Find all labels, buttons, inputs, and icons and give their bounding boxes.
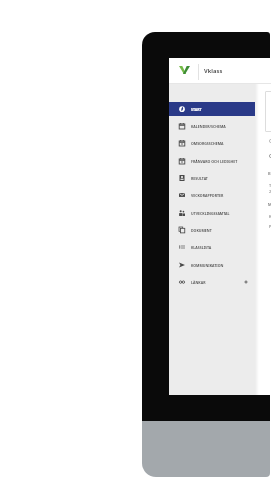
staticText: KLASSLISTA — [191, 245, 212, 250]
button[interactable]: Lägg till länk — [242, 278, 250, 286]
staticText: START — [191, 107, 202, 112]
staticText: UTVECKLINGSSAMTAL — [191, 211, 230, 216]
staticText: K — [269, 214, 271, 219]
button[interactable]: LÄNKAR — [169, 275, 255, 289]
button[interactable]: VECKORAPPORTER — [169, 188, 255, 202]
staticText: DOKUMENT — [191, 228, 212, 233]
staticText: OMSORGSSCHEMA — [191, 141, 224, 146]
button[interactable]: OMSORGSSCHEMA — [169, 136, 255, 150]
button[interactable]: START — [169, 102, 255, 116]
staticText: B — [268, 171, 271, 176]
button[interactable]: FRÅNVARO OCH LEDIGHET — [169, 154, 255, 168]
staticText: FRÅNVARO OCH LEDIGHET — [191, 159, 238, 164]
staticText: Vklass — [204, 67, 223, 75]
staticText: KALENDER/SCHEMA — [191, 124, 226, 129]
staticText: T — [269, 183, 271, 188]
button[interactable]: UTVECKLINGSSAMTAL — [169, 206, 255, 220]
staticText: VECKORAPPORTER — [191, 193, 224, 198]
button[interactable]: Vklass logotyp — [175, 62, 193, 78]
staticText: KOMMUNIKATION — [191, 263, 224, 268]
button[interactable]: KALENDER/SCHEMA — [169, 119, 255, 133]
staticText: M — [268, 202, 271, 207]
button[interactable]: Vklass — [204, 67, 223, 75]
staticText: P — [269, 224, 271, 229]
button[interactable]: DOKUMENT — [169, 223, 255, 237]
staticText: LÄNKAR — [191, 280, 206, 285]
staticText: 2 — [269, 189, 271, 194]
button[interactable]: KLASSLISTA — [169, 240, 255, 254]
staticText: RESULTAT — [191, 176, 208, 181]
button[interactable]: KOMMUNIKATION — [169, 258, 255, 272]
button[interactable]: RESULTAT — [169, 171, 255, 185]
